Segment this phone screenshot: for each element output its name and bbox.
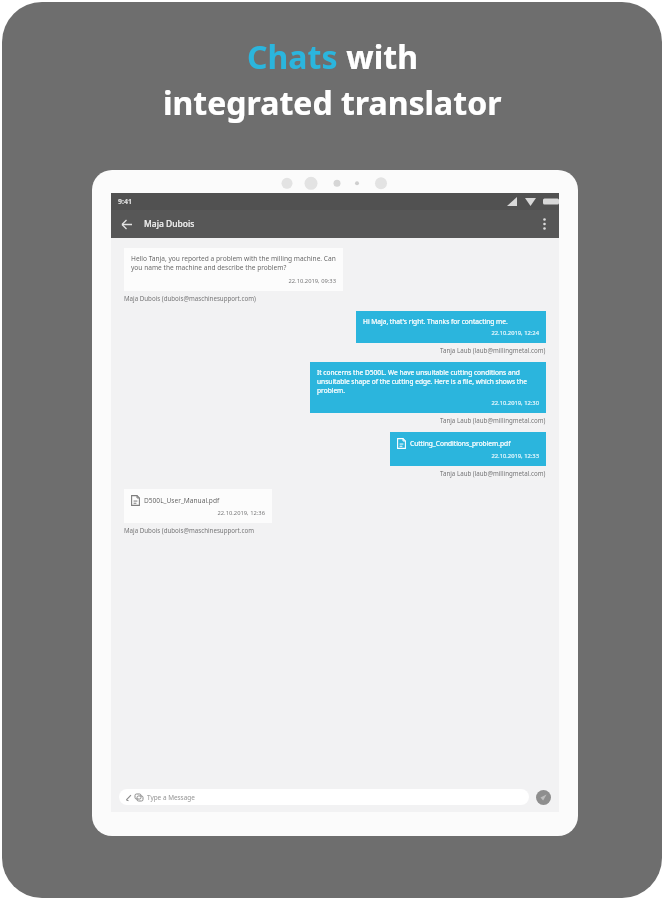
staticText: Type a Message	[147, 793, 195, 802]
staticText: Tanja Laub (laub@millingmetal.com)	[440, 346, 546, 354]
staticText: Chats	[247, 35, 338, 79]
button[interactable]: It concerns the D500L. We have unsuitabl…	[310, 362, 546, 413]
staticText: Hi Maja, that's right. Thanks for contac…	[363, 317, 508, 326]
button[interactable]: Hi Maja, that's right. Thanks for contac…	[356, 311, 546, 343]
staticText: Maja Dubois (dubois@maschinesupport.com	[124, 526, 254, 534]
button[interactable]: Type a Message	[119, 789, 529, 805]
staticText: D500L_User_Manual.pdf	[144, 496, 220, 505]
staticText: Tanja Laub (laub@millingmetal.com)	[440, 469, 546, 477]
button[interactable]: Back	[115, 213, 137, 235]
staticText: Tanja Laub (laub@millingmetal.com)	[440, 416, 546, 424]
staticText: with	[338, 35, 418, 79]
staticText: Cutting_Conditions_problem.pdf	[410, 439, 511, 448]
staticText: 9:41	[118, 197, 132, 207]
staticText: Hello Tanja, you reported a problem with…	[131, 254, 336, 272]
button[interactable]: Send	[536, 790, 551, 805]
button[interactable]: More options	[534, 214, 554, 234]
staticText: It concerns the D500L. We have unsuitabl…	[317, 368, 539, 395]
staticText: 22.10.2019, 12:30	[317, 399, 539, 407]
button[interactable]: Cutting_Conditions_problem.pdf	[390, 432, 546, 466]
staticText: integrated translator	[163, 81, 502, 125]
staticText: 22.10.2019, 12:24	[363, 329, 539, 337]
button[interactable]: D500L_User_Manual.pdf	[124, 489, 272, 523]
button[interactable]: Hello Tanja, you reported a problem with…	[124, 248, 343, 291]
staticText: 22.10.2019, 09:33	[131, 277, 336, 285]
staticText: 22.10.2019, 12:33	[397, 452, 539, 460]
staticText: Maja Dubois	[144, 218, 195, 230]
staticText: 22.10.2019, 12:36	[131, 509, 265, 517]
staticText: Maja Dubois (dubois@maschinesupport.com)	[124, 294, 256, 302]
